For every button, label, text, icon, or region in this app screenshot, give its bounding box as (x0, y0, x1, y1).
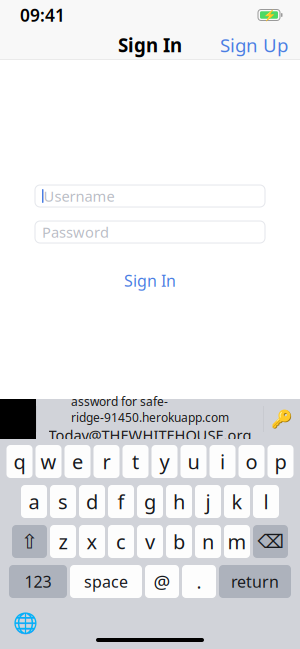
button[interactable]: v (137, 525, 163, 558)
staticText: n (202, 528, 214, 555)
button[interactable]: b (166, 525, 192, 558)
staticText: p (274, 448, 286, 475)
button[interactable]: g (137, 485, 163, 518)
button[interactable]: s (50, 485, 76, 518)
staticText: x (86, 528, 97, 555)
button[interactable]: h (166, 485, 192, 518)
staticText: w (40, 448, 56, 475)
button[interactable]: c (108, 525, 134, 558)
staticText: Password (42, 222, 109, 242)
staticText: Sign In (124, 270, 176, 291)
staticText: r (102, 448, 110, 475)
staticText: @ (153, 569, 170, 594)
staticText: Username (43, 186, 114, 206)
button[interactable]: assword for safe-ridge-91450.herokuapp.c… (36, 399, 263, 439)
staticText: i (220, 448, 225, 475)
staticText: s (58, 488, 68, 515)
button[interactable]: w (35, 445, 61, 478)
staticText: space (84, 571, 128, 592)
button[interactable]: a (21, 485, 47, 518)
button[interactable]: n (195, 525, 221, 558)
staticText: 09:41 (20, 3, 65, 26)
button[interactable]: z (50, 525, 76, 558)
staticText: m (227, 528, 246, 555)
staticText: 🔑 (271, 409, 293, 429)
staticText: Today@THEWHITEHOUSE.org (48, 425, 251, 445)
button[interactable]: t (122, 445, 148, 478)
staticText: g (144, 488, 156, 515)
staticText: v (145, 528, 155, 555)
staticText: assword for safe-ridge-91450.herokuapp.c… (71, 393, 229, 425)
button[interactable]: Sign Up (208, 27, 300, 63)
staticText: c (116, 528, 126, 555)
staticText: b (173, 528, 185, 555)
button[interactable]: return (219, 565, 291, 598)
button[interactable]: Next keyboard (8, 608, 42, 638)
button[interactable]: y (151, 445, 177, 478)
staticText: return (231, 571, 279, 592)
button[interactable]: r (93, 445, 119, 478)
button[interactable]: d (79, 485, 105, 518)
staticText: 123 (24, 571, 51, 592)
staticText: d (86, 488, 98, 515)
button[interactable]: x (79, 525, 105, 558)
staticText: t (132, 448, 139, 475)
staticText: 🌐 (12, 612, 37, 635)
button[interactable]: q (6, 445, 32, 478)
staticText: q (13, 448, 25, 475)
staticText: ⌫ (257, 531, 283, 552)
staticText: ⚡ (262, 9, 275, 21)
staticText: l (263, 488, 268, 515)
button[interactable]: u (180, 445, 206, 478)
staticText: o (245, 448, 257, 475)
button[interactable]: f (108, 485, 134, 518)
staticText: j (205, 488, 210, 515)
button[interactable]: p (267, 445, 293, 478)
button[interactable]: Delete (253, 525, 288, 558)
button[interactable]: @ (145, 565, 179, 598)
button[interactable]: l (253, 485, 279, 518)
staticText: h (173, 488, 185, 515)
button[interactable]: Sign In (108, 265, 192, 296)
button[interactable]: e (64, 445, 90, 478)
staticText: Sign In (118, 33, 182, 57)
button[interactable]: m (224, 525, 250, 558)
staticText: u (187, 448, 199, 475)
button[interactable]: j (195, 485, 221, 518)
staticText: ⇧ (21, 530, 38, 553)
button[interactable]: Shift (12, 525, 47, 558)
staticText: f (117, 488, 124, 515)
button[interactable]: . (182, 565, 216, 598)
staticText: k (231, 488, 242, 515)
button[interactable]: 123 (9, 565, 67, 598)
button[interactable]: k (224, 485, 250, 518)
button[interactable]: space (70, 565, 142, 598)
staticText: a (28, 488, 39, 515)
staticText: y (159, 448, 169, 475)
staticText: z (58, 528, 67, 555)
staticText: Sign Up (220, 33, 288, 57)
button[interactable]: Passwords (264, 399, 300, 439)
staticText: e (72, 448, 83, 475)
staticText: . (196, 569, 201, 594)
button[interactable]: o (238, 445, 264, 478)
button[interactable]: i (209, 445, 235, 478)
